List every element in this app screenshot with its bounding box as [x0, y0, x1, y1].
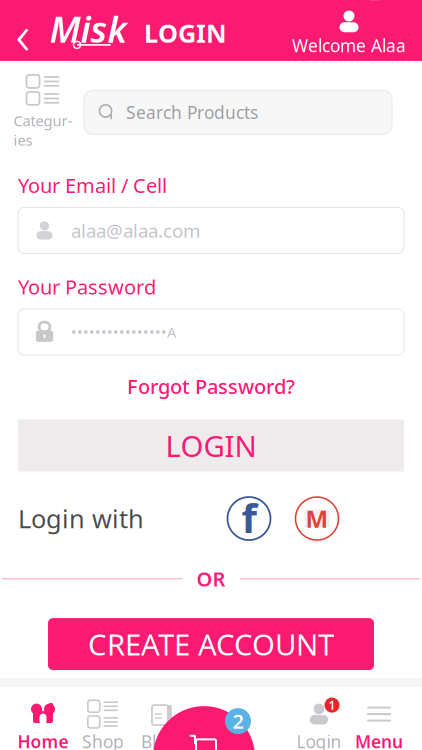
staticText: Menu [355, 730, 403, 750]
staticText: Categuries [13, 111, 72, 150]
staticText: 2 [232, 708, 243, 734]
staticText: alaa@alaa.com [71, 218, 200, 243]
staticText: Login with [18, 502, 144, 535]
staticText: Forgot Password? [127, 373, 295, 400]
staticText: M [305, 503, 328, 534]
button[interactable]: Login with Facebook [226, 495, 272, 541]
staticText: Login [296, 730, 341, 750]
staticText: Your Email / Cell [18, 172, 167, 198]
button[interactable]: Cart, 50.00 ILS, 2 items [148, 706, 260, 750]
button[interactable]: Home [13, 701, 73, 750]
button[interactable]: Back [0, 7, 46, 59]
button[interactable]: Categuries [12, 75, 74, 150]
staticText: Your Password [18, 273, 156, 300]
button[interactable]: ••••••••••••••••A [18, 309, 404, 355]
button[interactable]: Welcome Alaa [292, 9, 422, 57]
staticText: ••••••••••••••••A [71, 322, 176, 342]
staticText: Blogs [141, 730, 185, 750]
staticText: 1 [328, 697, 335, 713]
staticText: OR [196, 565, 225, 592]
staticText: Search Products [126, 101, 258, 124]
staticText: Home [17, 730, 68, 750]
button[interactable]: CREATE ACCOUNT [48, 618, 374, 670]
staticText: Misk [49, 5, 126, 53]
button[interactable]: alaa@alaa.com [18, 207, 404, 253]
staticText: LOGIN [144, 16, 227, 50]
staticText: CREATE ACCOUNT [88, 625, 334, 664]
button[interactable]: Shop [73, 701, 133, 750]
staticText: ‹ [15, 0, 30, 70]
staticText: Welcome Alaa [292, 34, 406, 57]
button[interactable]: Forgot Password? [117, 367, 305, 406]
button[interactable]: 1 [289, 701, 349, 750]
staticText: f [241, 491, 256, 544]
button[interactable]: Search Products [84, 90, 392, 134]
button[interactable]: Menu [349, 701, 409, 750]
button[interactable]: Blogs [133, 701, 193, 750]
staticText: Shop [82, 730, 124, 750]
button[interactable]: Login with Gmail [294, 495, 340, 541]
button[interactable]: LOGIN [18, 419, 404, 471]
staticText: LOGIN [165, 426, 256, 465]
